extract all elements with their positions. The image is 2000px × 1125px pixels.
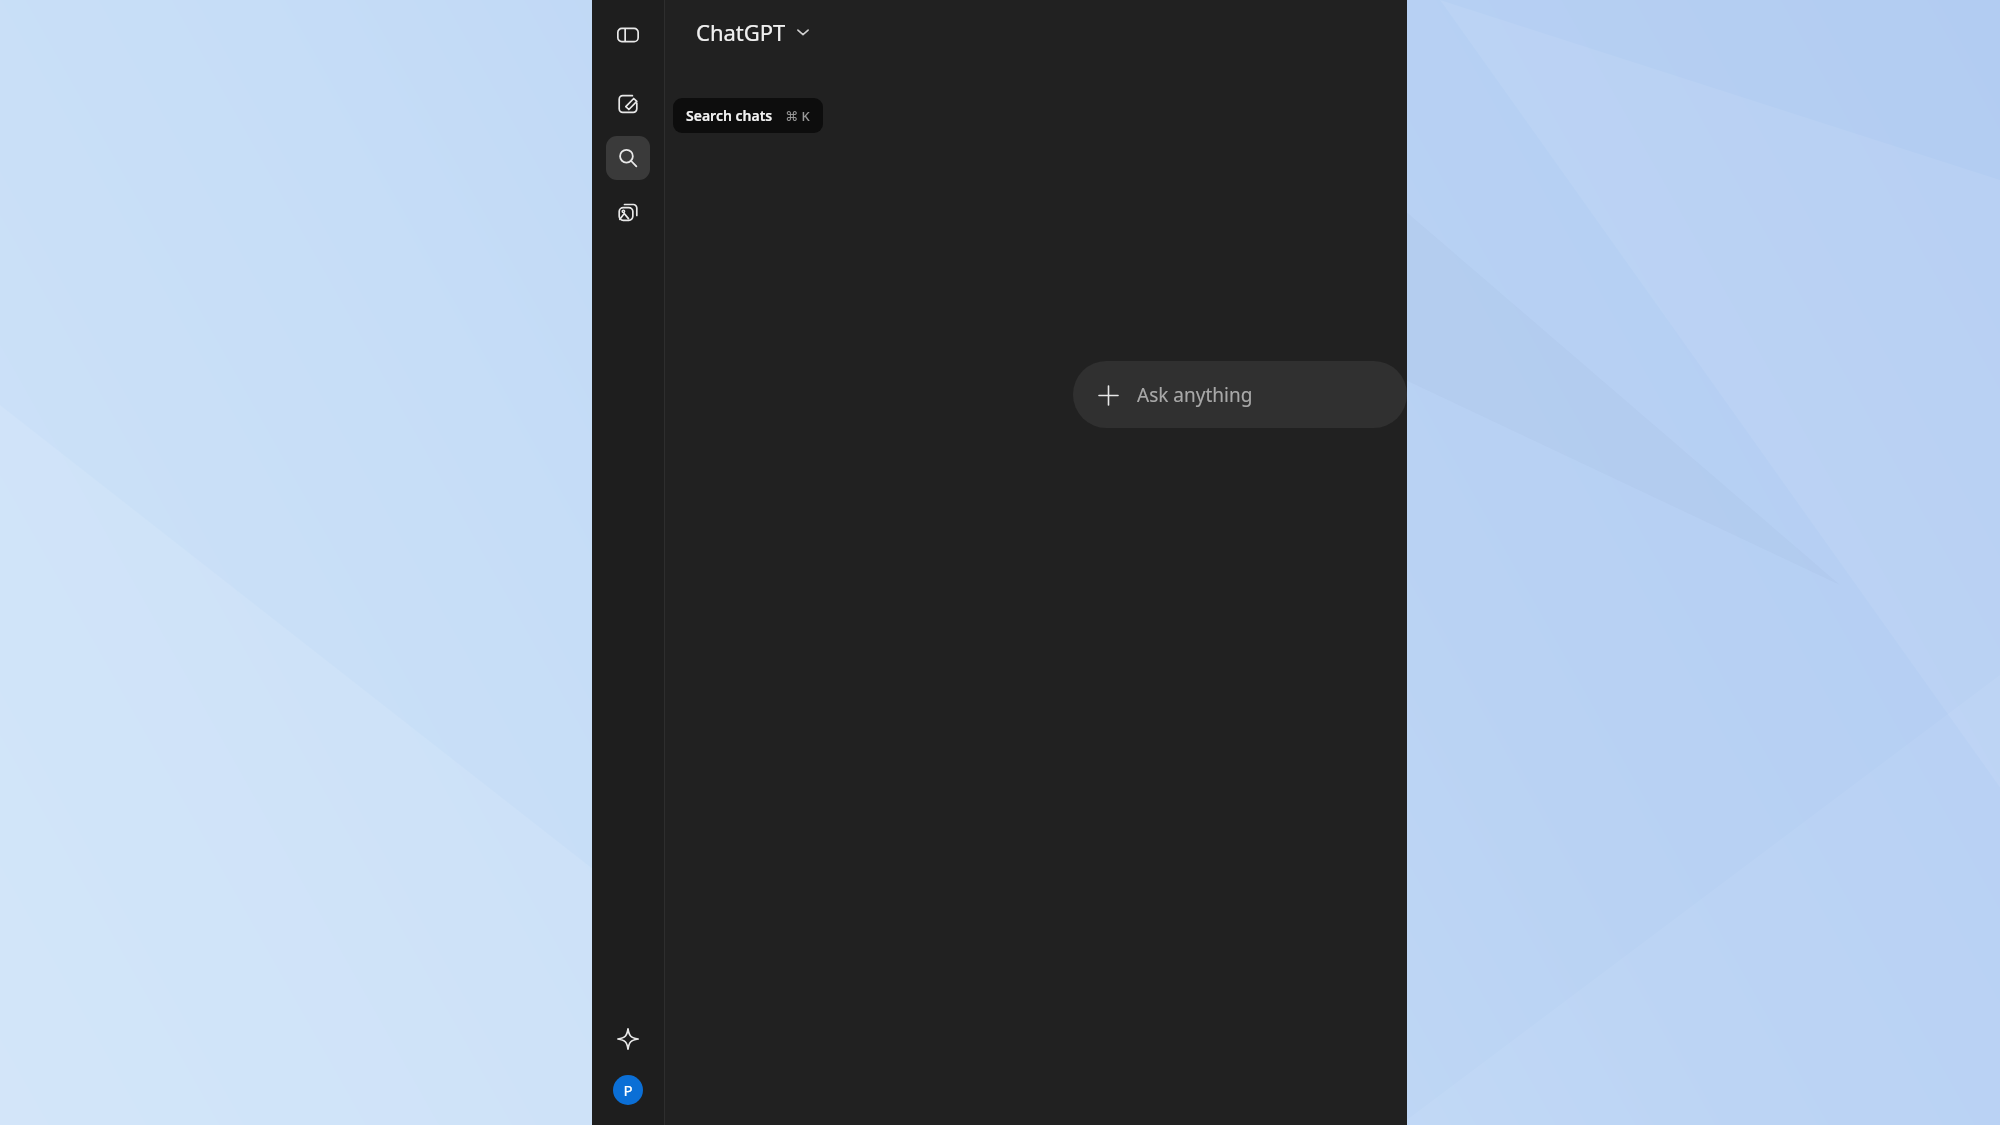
staticText: ⌘ K — [785, 107, 810, 125]
button[interactable]: Search chats — [606, 136, 650, 180]
button[interactable]: ChatGPT — [690, 13, 817, 51]
staticText: ChatGPT — [696, 17, 786, 47]
staticText: P — [623, 1080, 633, 1100]
button[interactable]: New chat — [606, 82, 650, 126]
button[interactable]: Library — [606, 190, 650, 234]
staticText: Ask anything — [1137, 382, 1253, 408]
button[interactable]: Add attachment — [1091, 378, 1125, 412]
staticText: Search chats — [686, 106, 773, 125]
button[interactable]: Add attachment — [1073, 361, 1407, 428]
button[interactable]: Profile — [613, 1075, 643, 1105]
button[interactable]: Toggle sidebar — [606, 13, 650, 57]
button[interactable]: Upgrade — [606, 1017, 650, 1061]
